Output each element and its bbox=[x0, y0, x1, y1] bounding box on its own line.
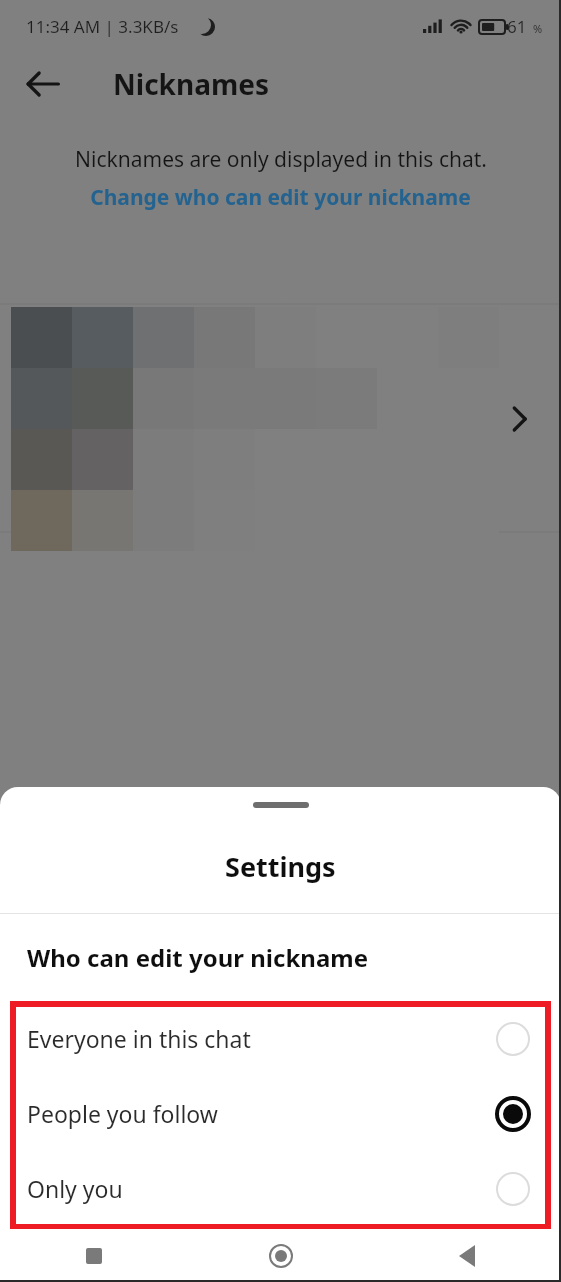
button[interactable]: Home bbox=[187, 1229, 374, 1282]
staticText: Nicknames are only displayed in this cha… bbox=[75, 145, 487, 174]
staticText: Change who can edit your nickname bbox=[90, 183, 471, 212]
staticText: 61 bbox=[507, 15, 527, 38]
button[interactable]: Everyone in this chat bbox=[0, 1001, 561, 1076]
staticText: 11:34 AM | 3.3KB/s bbox=[26, 15, 179, 38]
staticText: Only you bbox=[27, 1173, 493, 1204]
staticText: Who can edit your nickname bbox=[27, 941, 368, 974]
button[interactable]: Back bbox=[374, 1229, 561, 1282]
staticText: Everyone in this chat bbox=[27, 1023, 493, 1054]
button[interactable]: Back bbox=[20, 60, 68, 108]
button[interactable]: Only you bbox=[0, 1151, 561, 1226]
button[interactable]: Change who can edit your nickname bbox=[90, 183, 471, 212]
button[interactable]: Recents bbox=[0, 1229, 187, 1282]
button[interactable]: People you follow bbox=[0, 1076, 561, 1151]
staticText: Nicknames bbox=[113, 65, 269, 103]
button[interactable]: Open bbox=[494, 396, 540, 442]
staticText: Settings bbox=[225, 848, 336, 885]
staticText: % bbox=[533, 21, 543, 36]
staticText: People you follow bbox=[27, 1098, 493, 1129]
